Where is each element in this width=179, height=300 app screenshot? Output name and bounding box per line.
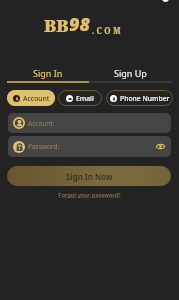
button[interactable]: Account: — [8, 113, 171, 133]
staticText: Sign Up — [114, 67, 147, 79]
staticText: Password: — [28, 142, 60, 151]
button[interactable]: Account — [7, 90, 55, 106]
staticText: .COM — [92, 25, 124, 36]
staticText: 98 — [69, 12, 90, 37]
button[interactable]: Forgot your password? — [58, 191, 121, 199]
staticText: Email — [76, 94, 94, 103]
staticText: Phone Number — [120, 94, 170, 103]
button[interactable]: Phone Number — [106, 90, 173, 106]
staticText: BB — [44, 14, 69, 37]
staticText: Sign In Now — [66, 171, 113, 182]
staticText: Account: — [28, 119, 55, 128]
button[interactable]: Sign In — [7, 67, 89, 83]
staticText: Account — [23, 94, 50, 103]
button[interactable]: Show password — [155, 141, 166, 152]
button[interactable]: Password: — [8, 136, 171, 157]
staticText: Sign In — [33, 67, 63, 79]
button[interactable]: Sign In Now — [7, 166, 171, 186]
button[interactable]: Sign Up — [89, 67, 172, 83]
button[interactable]: Email — [58, 90, 102, 106]
